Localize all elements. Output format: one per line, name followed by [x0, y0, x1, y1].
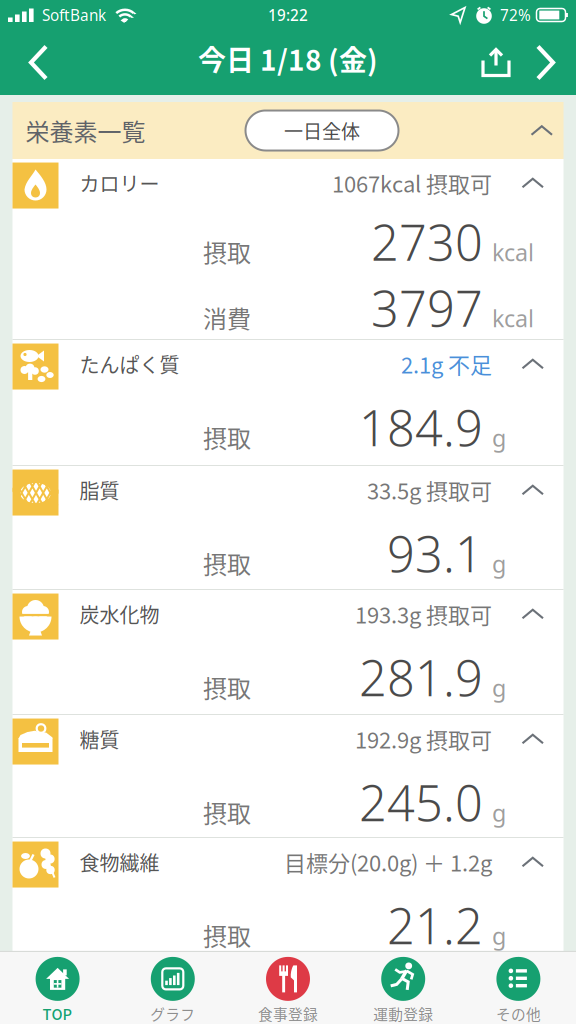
- staticText: たんぱく質: [79, 349, 179, 378]
- button[interactable]: 運動登録: [346, 957, 461, 1024]
- staticText: 炭水化物: [79, 599, 159, 628]
- staticText: 281.9: [359, 644, 483, 710]
- staticText: 2.1g 不足: [401, 348, 492, 380]
- button[interactable]: [478, 47, 536, 77]
- staticText: 193.3g 摂取可: [355, 598, 492, 630]
- button[interactable]: グラフ: [115, 957, 230, 1024]
- staticText: 摂取: [203, 546, 251, 580]
- staticText: 1067kcal 摂取可: [332, 167, 492, 199]
- staticText: g: [492, 672, 506, 703]
- staticText: 184.9: [359, 394, 483, 460]
- button[interactable]: 炭水化物: [12, 590, 563, 638]
- staticText: g: [492, 920, 506, 951]
- staticText: 2730: [371, 209, 483, 275]
- staticText: 72%: [500, 5, 531, 25]
- staticText: 目標分(20.0g) ＋ 1.2g: [284, 846, 492, 878]
- button[interactable]: 食物繊維: [12, 838, 563, 886]
- button[interactable]: TOP: [0, 957, 115, 1024]
- staticText: 摂取: [203, 918, 251, 952]
- button[interactable]: [530, 125, 563, 136]
- staticText: 19:22: [268, 5, 308, 25]
- button[interactable]: たんぱく質: [12, 340, 563, 388]
- staticText: g: [492, 797, 506, 828]
- staticText: g: [492, 548, 506, 579]
- staticText: kcal: [492, 302, 534, 334]
- staticText: 245.0: [359, 769, 483, 835]
- staticText: SoftBank: [42, 5, 106, 25]
- button[interactable]: [0, 45, 58, 80]
- staticText: カロリー: [79, 168, 159, 197]
- staticText: 消費: [203, 300, 251, 335]
- button[interactable]: カロリー: [12, 159, 563, 207]
- staticText: 一日全体: [284, 117, 360, 144]
- button[interactable]: 食事登録: [230, 957, 346, 1024]
- staticText: kcal: [492, 236, 534, 268]
- staticText: 脂質: [79, 475, 119, 504]
- staticText: 食事登録: [258, 1003, 318, 1024]
- staticText: 食物繊維: [79, 847, 159, 876]
- button[interactable]: その他: [461, 957, 576, 1024]
- staticText: 栄養素一覧: [25, 113, 145, 148]
- button[interactable]: [536, 45, 576, 80]
- staticText: 糖質: [79, 724, 119, 753]
- staticText: その他: [496, 1003, 541, 1024]
- staticText: 192.9g 摂取可: [355, 723, 492, 755]
- staticText: 摂取: [203, 420, 251, 454]
- staticText: 93.1: [387, 520, 483, 586]
- button[interactable]: 糖質: [12, 715, 563, 763]
- staticText: 今日 1/18 (金): [198, 38, 378, 79]
- staticText: 摂取: [203, 670, 251, 704]
- staticText: 33.5g 摂取可: [367, 474, 492, 506]
- staticText: 摂取: [203, 795, 251, 829]
- staticText: 3797: [371, 275, 483, 341]
- button[interactable]: 脂質: [12, 466, 563, 514]
- staticText: 運動登録: [373, 1003, 433, 1024]
- button[interactable]: 一日全体: [245, 110, 398, 150]
- staticText: 摂取: [203, 234, 251, 269]
- staticText: g: [492, 422, 506, 453]
- staticText: 21.2: [387, 892, 483, 958]
- staticText: TOP: [43, 1003, 73, 1024]
- staticText: グラフ: [150, 1003, 195, 1024]
